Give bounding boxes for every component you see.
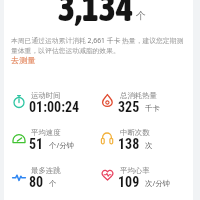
staticText: 109 (118, 174, 140, 190)
staticText: 80 (29, 174, 44, 190)
staticText: 次 (145, 141, 153, 150)
staticText: 325 (118, 99, 140, 115)
button[interactable]: 平均速度 (12, 128, 100, 156)
staticText: 运动时间 (31, 91, 61, 100)
staticText: 中断次数 (120, 128, 150, 137)
staticText: 个 (136, 9, 146, 22)
button[interactable]: 平均心率 (101, 166, 189, 194)
staticText: 最多连跳 (31, 166, 61, 175)
button[interactable]: 中断次数 (101, 128, 189, 156)
staticText: 次/分钟 (145, 178, 170, 188)
staticText: 平均心率 (120, 166, 150, 175)
staticText: 千卡 (145, 104, 160, 113)
button[interactable]: 最多连跳 (12, 166, 100, 194)
staticText: 01:00:24 (29, 99, 80, 115)
staticText: 量体重，以评估您运动减脂的效果。 (11, 46, 120, 55)
staticText: 总消耗热量 (120, 91, 157, 100)
staticText: 本周已通过运动累计消耗 2,661 千卡 热量，建议您定期测 (11, 36, 184, 45)
button[interactable]: 总消耗热量 (101, 91, 189, 119)
staticText: 3,134 (58, 0, 134, 29)
staticText: 138 (118, 136, 140, 152)
staticText: 51 (29, 136, 44, 152)
staticText: 个 (49, 179, 57, 188)
staticText: 个/分钟 (49, 140, 74, 150)
staticText: 去测量 (11, 55, 36, 65)
button[interactable]: 去测量 (9, 53, 38, 67)
button[interactable]: 运动时间 (12, 91, 100, 119)
staticText: 平均速度 (31, 128, 61, 137)
